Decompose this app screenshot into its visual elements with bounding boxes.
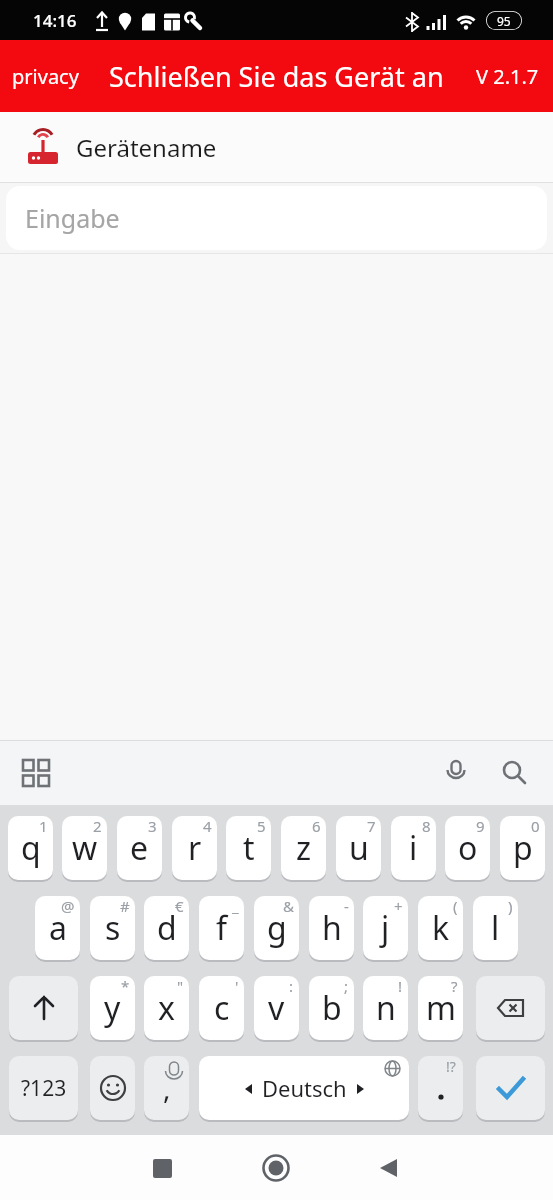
button[interactable]: w — [62, 816, 107, 880]
button[interactable] — [476, 976, 545, 1040]
staticText: 4 — [203, 816, 212, 836]
staticText: privacy — [12, 63, 79, 90]
button[interactable]: e — [117, 816, 162, 880]
button[interactable]: f — [199, 896, 244, 960]
staticText: o — [458, 826, 478, 870]
button[interactable]: j — [363, 896, 408, 960]
staticText: * — [121, 976, 130, 996]
button[interactable]: Gerätename — [0, 112, 553, 182]
staticText: w — [72, 826, 98, 870]
staticText: y — [104, 986, 121, 1030]
staticText: Gerätename — [76, 131, 217, 164]
button[interactable] — [501, 759, 529, 787]
staticText: !? — [446, 1057, 456, 1076]
staticText: c — [214, 986, 230, 1030]
staticText: e — [130, 826, 149, 870]
button[interactable]: Deutsch — [199, 1056, 409, 1120]
staticText: 5 — [257, 816, 266, 836]
button[interactable]: h — [309, 896, 354, 960]
staticText: Eingabe — [25, 201, 120, 235]
staticText: 9 — [476, 816, 485, 836]
button[interactable]: s — [90, 896, 135, 960]
staticText: d — [157, 906, 177, 950]
staticText: ! — [398, 976, 403, 996]
button[interactable] — [443, 760, 469, 786]
button[interactable]: b — [309, 976, 354, 1040]
button[interactable] — [262, 1154, 290, 1182]
staticText: & — [283, 896, 294, 916]
button[interactable]: l — [473, 896, 518, 960]
button[interactable]: !? — [418, 1056, 463, 1120]
staticText: ( — [453, 896, 458, 916]
staticText: v — [268, 986, 285, 1030]
staticText: € — [175, 896, 184, 916]
staticText: g — [267, 906, 287, 950]
button[interactable]: m — [418, 976, 463, 1040]
button[interactable]: g — [254, 896, 299, 960]
button[interactable]: x — [144, 976, 189, 1040]
button[interactable] — [476, 1056, 545, 1120]
button[interactable]: o — [445, 816, 490, 880]
button[interactable]: r — [172, 816, 217, 880]
button[interactable]: q — [8, 816, 53, 880]
button[interactable]: a — [35, 896, 80, 960]
button[interactable]: , — [144, 1056, 189, 1120]
staticText: i — [409, 826, 418, 870]
staticText: u — [349, 826, 369, 870]
staticText: 14:16 — [33, 9, 77, 32]
staticText: n — [376, 986, 396, 1030]
staticText: 3 — [148, 816, 157, 836]
staticText: ? — [451, 976, 458, 996]
button[interactable]: d — [144, 896, 189, 960]
staticText: # — [120, 896, 130, 916]
button[interactable]: n — [363, 976, 408, 1040]
button[interactable] — [150, 1156, 174, 1180]
staticText: h — [322, 906, 342, 950]
staticText: 6 — [312, 816, 321, 836]
button[interactable]: y — [90, 976, 135, 1040]
staticText: x — [158, 986, 175, 1030]
button[interactable] — [23, 760, 49, 786]
staticText: ; — [344, 976, 349, 996]
staticText: ' — [235, 976, 239, 996]
staticText: p — [513, 826, 533, 870]
button[interactable]: i — [391, 816, 436, 880]
staticText: " — [177, 976, 184, 996]
staticText: k — [432, 906, 450, 950]
staticText: r — [188, 826, 202, 870]
button[interactable] — [9, 976, 78, 1040]
staticText: a — [49, 906, 67, 950]
staticText: t — [243, 826, 255, 870]
staticText: Deutsch — [262, 1073, 347, 1103]
staticText: 8 — [422, 816, 431, 836]
button[interactable]: Eingabe — [6, 186, 547, 250]
staticText: : — [289, 976, 294, 996]
staticText: @ — [61, 896, 75, 916]
staticText: 2 — [93, 816, 102, 836]
staticText: + — [394, 896, 403, 916]
staticText: f — [216, 906, 228, 950]
button[interactable]: ?123 — [9, 1056, 78, 1120]
staticText: _ — [232, 896, 239, 916]
button[interactable] — [376, 1156, 400, 1180]
button[interactable]: u — [336, 816, 381, 880]
button[interactable] — [90, 1056, 135, 1120]
button[interactable]: privacy — [0, 40, 553, 112]
button[interactable]: t — [226, 816, 271, 880]
staticText: Schließen Sie das Gerät an — [109, 58, 444, 95]
button[interactable]: c — [199, 976, 244, 1040]
staticText: z — [296, 826, 312, 870]
button[interactable]: v — [254, 976, 299, 1040]
button[interactable]: k — [418, 896, 463, 960]
button[interactable]: z — [281, 816, 326, 880]
staticText: j — [381, 906, 390, 950]
staticText: q — [21, 826, 41, 870]
staticText: 95 — [497, 13, 511, 29]
staticText: l — [491, 906, 500, 950]
staticText: ) — [508, 896, 513, 916]
button[interactable]: p — [500, 816, 545, 880]
staticText: m — [426, 986, 456, 1030]
staticText: 0 — [531, 816, 540, 836]
staticText: - — [344, 896, 349, 916]
staticText: b — [322, 986, 342, 1030]
